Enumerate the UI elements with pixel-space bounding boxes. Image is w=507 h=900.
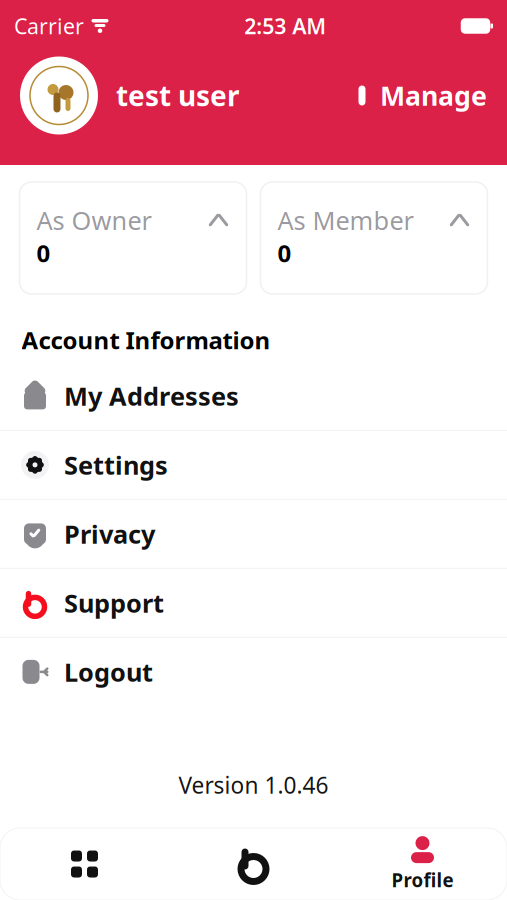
button[interactable]: As Member	[260, 182, 487, 294]
button[interactable]: Dashboard	[0, 828, 169, 900]
staticText: test user	[116, 77, 240, 114]
staticText: As Member	[277, 203, 413, 237]
button[interactable]: Settings	[0, 431, 507, 499]
staticText: 0	[36, 237, 50, 269]
staticText: Settings	[64, 448, 168, 482]
button[interactable]: As Owner	[19, 182, 246, 294]
button[interactable]: Home	[169, 828, 338, 900]
staticText: Carrier	[14, 12, 84, 40]
staticText: 2:53 AM	[244, 12, 326, 40]
staticText: My Addresses	[64, 379, 239, 413]
button[interactable]: Profile	[338, 828, 507, 900]
staticText: Account Information	[21, 324, 270, 356]
staticText: Privacy	[64, 517, 155, 551]
staticText: Manage	[380, 78, 487, 113]
button[interactable]: Logout	[0, 638, 507, 706]
staticText: Support	[64, 586, 164, 620]
button[interactable]: Support	[0, 569, 507, 637]
staticText: 0	[277, 237, 291, 269]
staticText: As Owner	[36, 203, 151, 237]
staticText: Profile	[391, 868, 453, 892]
button[interactable]: My Addresses	[0, 362, 507, 430]
button[interactable]: Manage	[352, 78, 487, 113]
button[interactable]: Privacy	[0, 500, 507, 568]
staticText: Logout	[64, 655, 153, 689]
staticText: Version 1.0.46	[178, 770, 328, 800]
